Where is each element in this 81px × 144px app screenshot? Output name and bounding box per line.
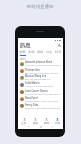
staticText: 訊息: [55, 121, 61, 124]
staticText: Give me a call when you're free: [25, 106, 60, 109]
staticText: Liam Carter Owens: [25, 89, 48, 92]
staticText: Sure, let's meet up tomorrow at 9: [25, 63, 61, 67]
button[interactable]: 封存: [54, 49, 63, 55]
staticText: Just sent the files over for you: [25, 71, 59, 74]
button[interactable]: Sofia Martin: [18, 81, 63, 88]
button[interactable]: 未讀: [27, 49, 36, 55]
button[interactable]: Amanda Johnson Reed: [18, 60, 63, 67]
staticText: 動態: [44, 121, 50, 124]
staticText: Thanks a lot for the quick update: [25, 84, 61, 88]
staticText: 未讀: [28, 50, 35, 54]
button[interactable]: Nora Patel: [18, 95, 63, 102]
staticText: See you at the office later today: [25, 92, 61, 95]
button[interactable]: Marcus Wong Lee: [18, 74, 63, 81]
button[interactable]: Liam Carter Owens: [18, 88, 63, 95]
staticText: 主頁: [21, 121, 27, 124]
button[interactable]: 群組: [36, 49, 45, 55]
staticText: 封存: [55, 50, 62, 54]
staticText: 最近: [20, 57, 26, 60]
staticText: 即時消息通知: [27, 4, 54, 10]
staticText: Marcus Wong Lee: [25, 74, 47, 77]
button[interactable]: 動態: [41, 117, 52, 124]
staticText: 聯絡: [33, 121, 39, 124]
staticText: Thomas Kim: [25, 68, 40, 71]
button[interactable]: 好友: [45, 49, 54, 55]
button[interactable]: 訊息: [52, 117, 63, 124]
staticText: Amanda Johnson Reed: [25, 60, 52, 63]
staticText: Sofia Martin: [25, 81, 40, 84]
button[interactable]: Henry Diaz: [18, 102, 63, 109]
button[interactable]: 聯絡: [30, 117, 41, 124]
staticText: Can we reschedule the meeting?: [25, 77, 61, 81]
staticText: 群組: [37, 50, 44, 54]
button[interactable]: Thomas Kim: [18, 67, 63, 74]
staticText: Henry Diaz: [25, 103, 39, 106]
button[interactable]: 主頁: [18, 117, 30, 124]
staticText: 訊息: [20, 42, 31, 49]
button[interactable]: Search: [58, 44, 61, 47]
staticText: 全部: [19, 50, 26, 54]
staticText: Sounds good to me, talk soon: [25, 99, 59, 102]
staticText: Nora Patel: [25, 96, 38, 99]
button[interactable]: 全部: [18, 49, 27, 55]
staticText: 好友: [46, 50, 53, 54]
